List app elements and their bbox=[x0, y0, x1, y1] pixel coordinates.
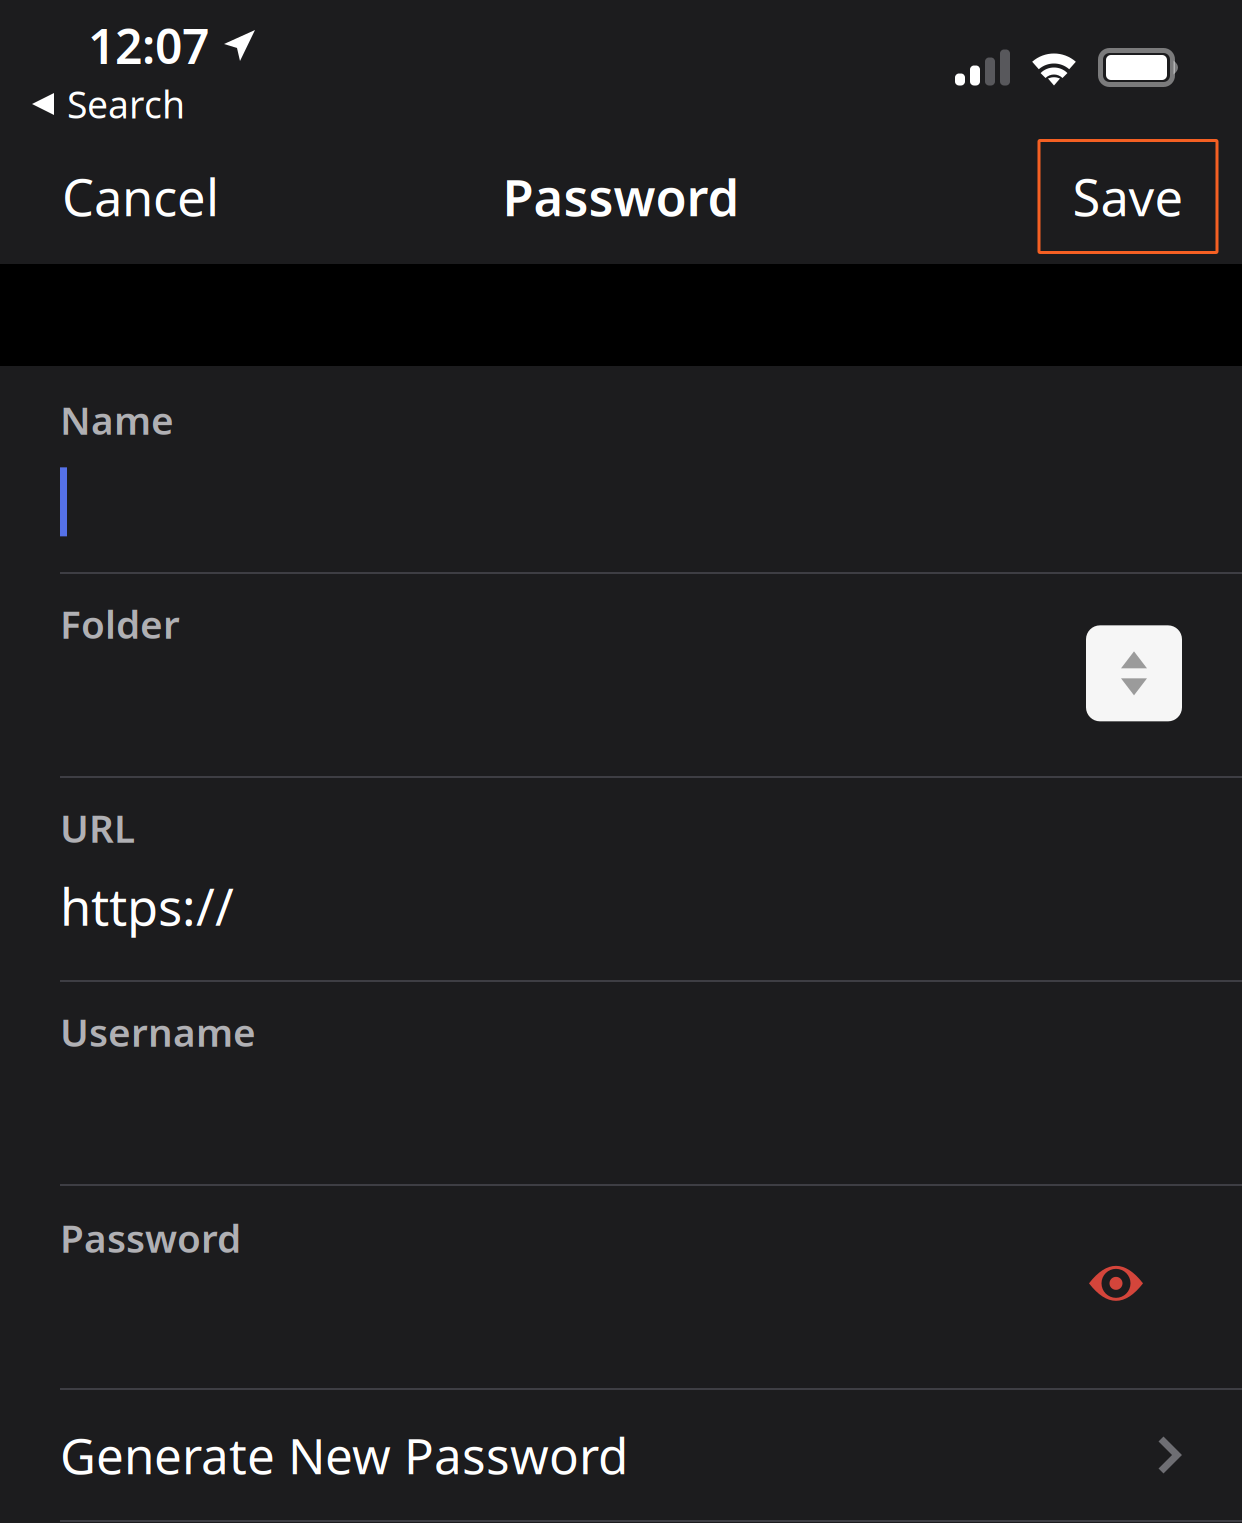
button[interactable]: Save bbox=[1039, 140, 1217, 252]
button[interactable]: Username bbox=[0, 982, 1242, 1184]
staticText: Folder bbox=[60, 598, 180, 649]
staticText: Cancel bbox=[62, 163, 219, 230]
staticText: Generate New Password bbox=[60, 1422, 628, 1488]
button[interactable]: Generate New Password bbox=[0, 1390, 1242, 1520]
staticText: 12:07 bbox=[88, 14, 209, 77]
button[interactable]: Cancel bbox=[0, 140, 245, 252]
button[interactable]: Name bbox=[0, 366, 1242, 572]
staticText: Save bbox=[1072, 163, 1183, 230]
button[interactable]: Choose folder bbox=[1086, 625, 1182, 721]
button[interactable]: URL bbox=[0, 778, 1242, 980]
staticText: Password bbox=[502, 163, 739, 230]
staticText: Name bbox=[60, 394, 174, 445]
button[interactable]: Show password bbox=[1089, 1259, 1242, 1307]
staticText: Search bbox=[67, 79, 185, 129]
staticText: https:// bbox=[60, 872, 234, 940]
button[interactable]: Search bbox=[0, 79, 203, 129]
staticText: URL bbox=[60, 802, 135, 853]
staticText: Password bbox=[60, 1212, 241, 1263]
staticText: Username bbox=[60, 1006, 256, 1057]
